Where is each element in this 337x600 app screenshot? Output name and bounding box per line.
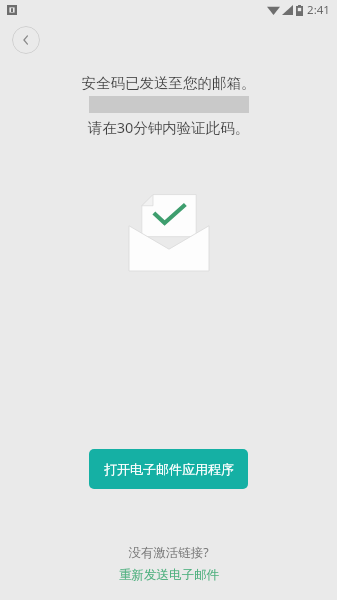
staticText: 安全码已发送至您的邮箱。 [24,74,313,92]
staticText: 没有激活链接? [0,544,337,561]
staticText: 重新发送电子邮件 [119,567,219,583]
button[interactable]: 重新发送电子邮件 [113,566,225,584]
button[interactable]: 打开电子邮件应用程序 [89,449,248,489]
staticText: 打开电子邮件应用程序 [104,461,234,477]
staticText: 请在30分钟内验证此码。 [24,117,313,137]
staticText: 2:41 [307,2,330,18]
button[interactable]: Back [12,26,40,54]
